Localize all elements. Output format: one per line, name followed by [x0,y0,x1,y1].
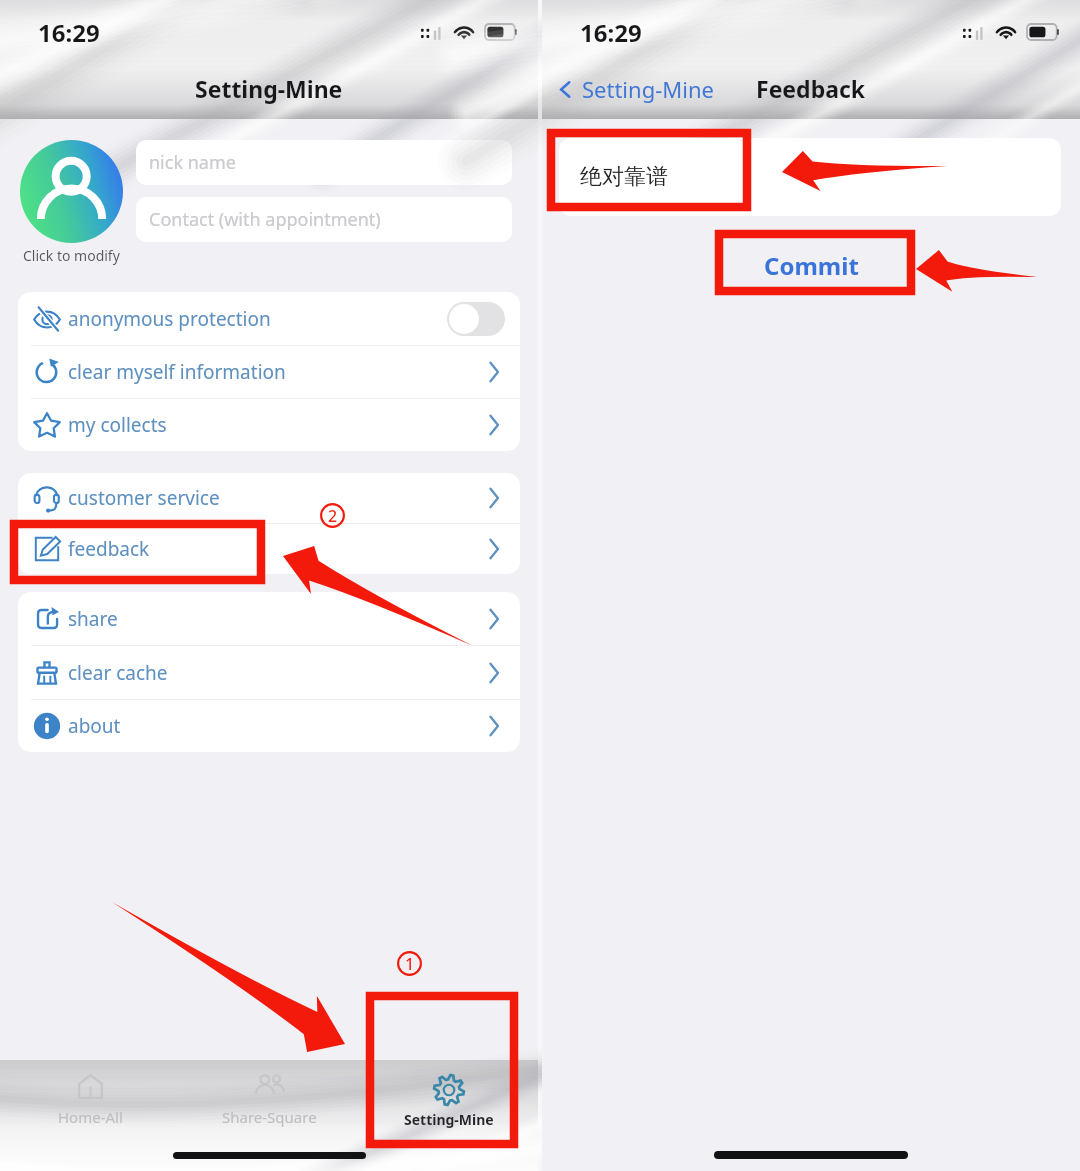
button[interactable]: about [18,700,520,752]
staticText: clear myself information [68,359,286,385]
staticText: Setting-Mine [404,1110,494,1129]
button[interactable]: Home-All [0,1060,180,1138]
staticText: about [68,713,121,739]
button[interactable]: clear cache [18,646,520,699]
button[interactable]: Contact (with appointment) [136,197,512,242]
button[interactable]: my collects [18,399,520,451]
button[interactable]: anonymous protection [18,292,520,345]
staticText: Share-Square [222,1107,317,1127]
staticText: anonymous protection [68,306,271,332]
staticText: my collects [68,412,167,438]
button[interactable]: Toggle anonymous protection [447,302,505,336]
staticText: Feedback [756,73,866,104]
staticText: Home-All [58,1107,123,1127]
staticText: 16:29 [580,16,642,49]
button[interactable]: customer service [18,473,520,523]
button[interactable]: nick name [136,140,512,185]
button[interactable]: feedback [18,524,520,574]
staticText: 16:29 [38,16,100,49]
staticText: nick name [149,150,236,175]
button[interactable]: Setting-Mine [359,1060,538,1138]
button[interactable]: Share-Square [180,1060,359,1138]
staticText: 1 [405,953,415,975]
staticText: share [68,606,118,632]
staticText: Setting-Mine [195,73,343,104]
staticText: Click to modify [23,246,120,265]
button[interactable]: Setting-Mine [542,70,722,108]
staticText: 2 [328,505,338,527]
staticText: customer service [68,485,220,511]
staticText: clear cache [68,660,168,686]
staticText: Contact (with appointment) [149,207,381,232]
staticText: Setting-Mine [582,74,714,104]
staticText: feedback [68,536,150,562]
button[interactable]: Change avatar [20,140,123,243]
button[interactable]: 绝对靠谱 [559,138,1061,216]
staticText: 绝对靠谱 [580,163,668,191]
staticText: Commit [764,249,859,282]
button[interactable]: share [18,592,520,645]
button[interactable]: clear myself information [18,346,520,398]
button[interactable]: Commit [723,241,899,290]
